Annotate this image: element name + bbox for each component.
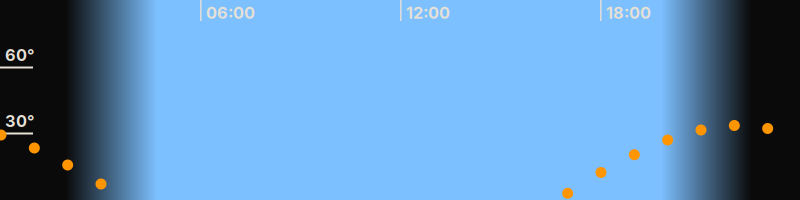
staticText: 06:00 — [206, 3, 255, 23]
staticText: 60° — [5, 45, 35, 65]
staticText: 30° — [5, 111, 35, 131]
staticText: 12:00 — [406, 3, 450, 23]
staticText: 18:00 — [606, 3, 651, 23]
